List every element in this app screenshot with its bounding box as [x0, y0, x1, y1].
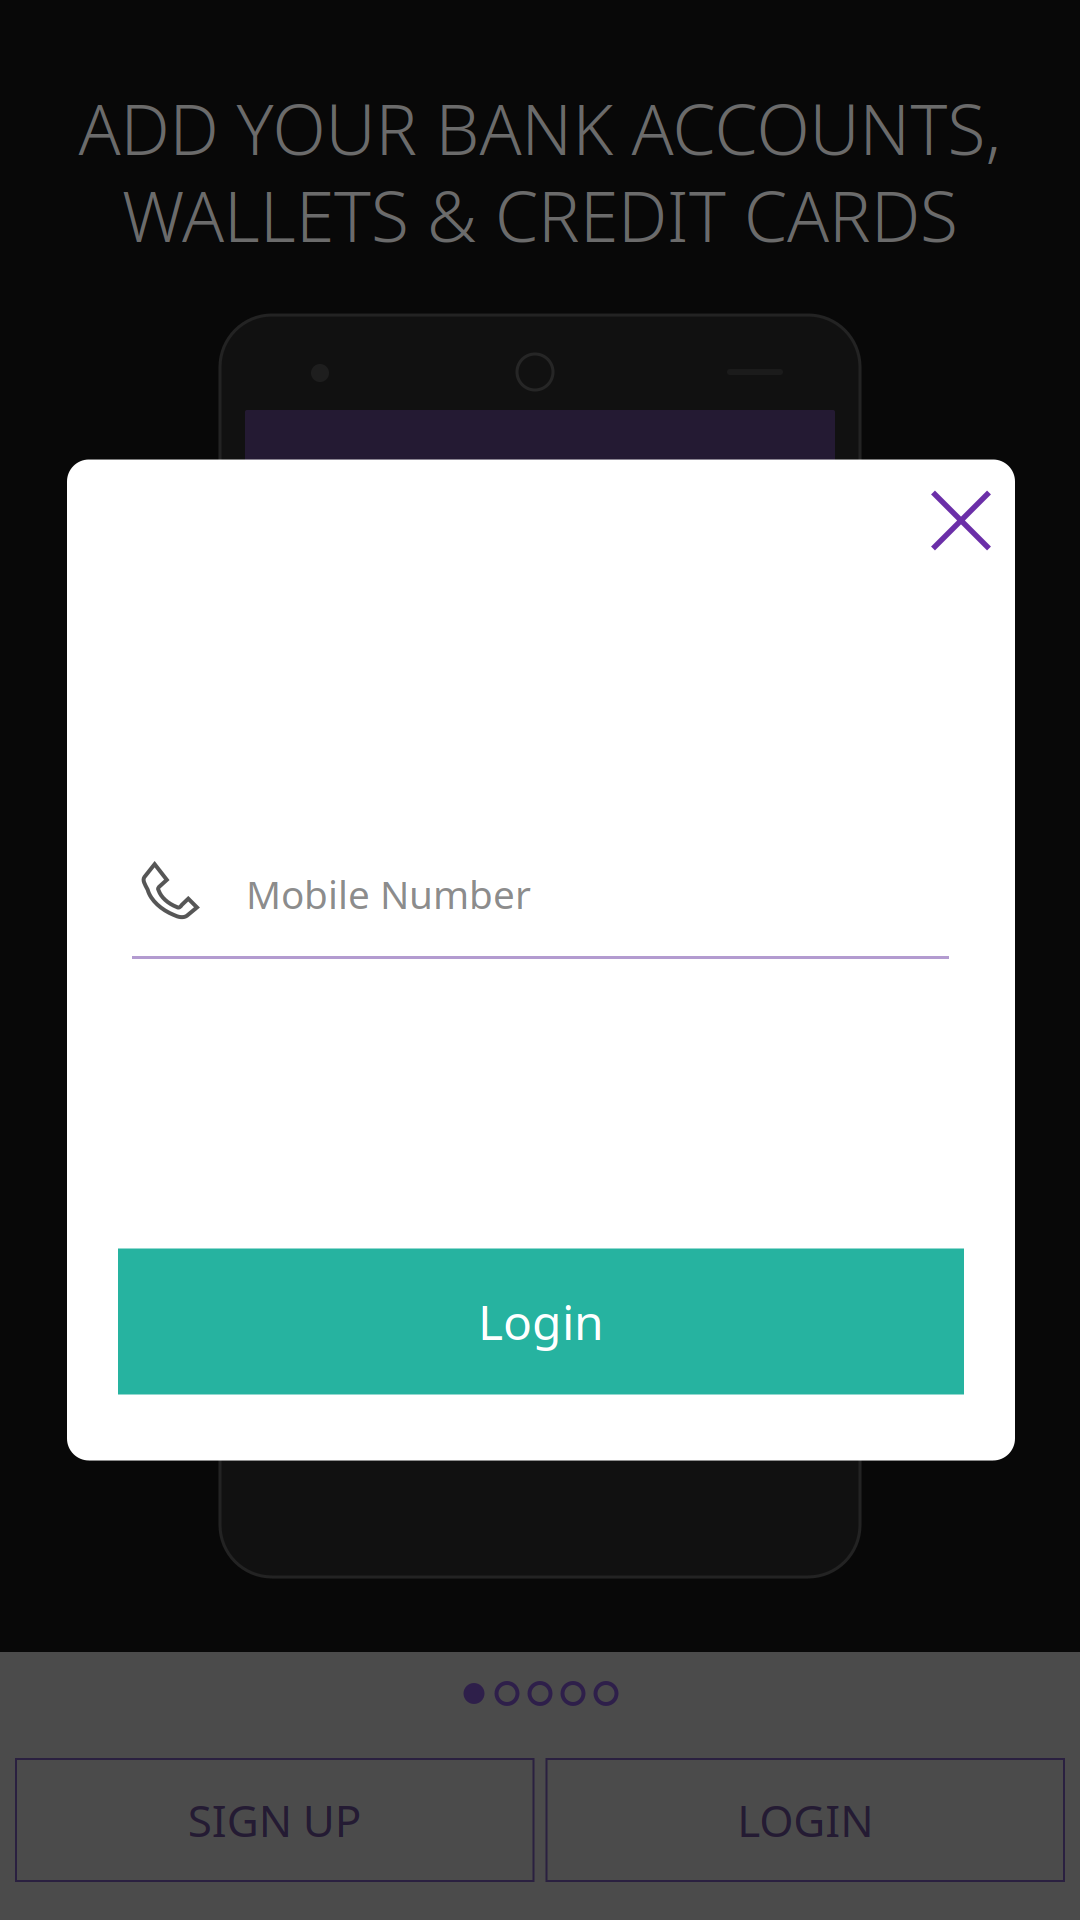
button[interactable]: Close — [933, 459, 1015, 548]
staticText: Login — [478, 1290, 604, 1353]
staticText: LOGIN — [737, 1791, 873, 1849]
staticText: SIGN UP — [188, 1791, 362, 1849]
button[interactable]: LOGIN — [546, 1759, 1064, 1881]
button[interactable]: SIGN UP — [16, 1759, 533, 1881]
staticText: Mobile Number — [246, 868, 531, 920]
staticText: WALLETS & CREDIT CARDS — [122, 169, 958, 261]
staticText: ADD YOUR BANK ACCOUNTS, — [78, 82, 1001, 174]
button[interactable]: Login — [118, 1248, 964, 1394]
